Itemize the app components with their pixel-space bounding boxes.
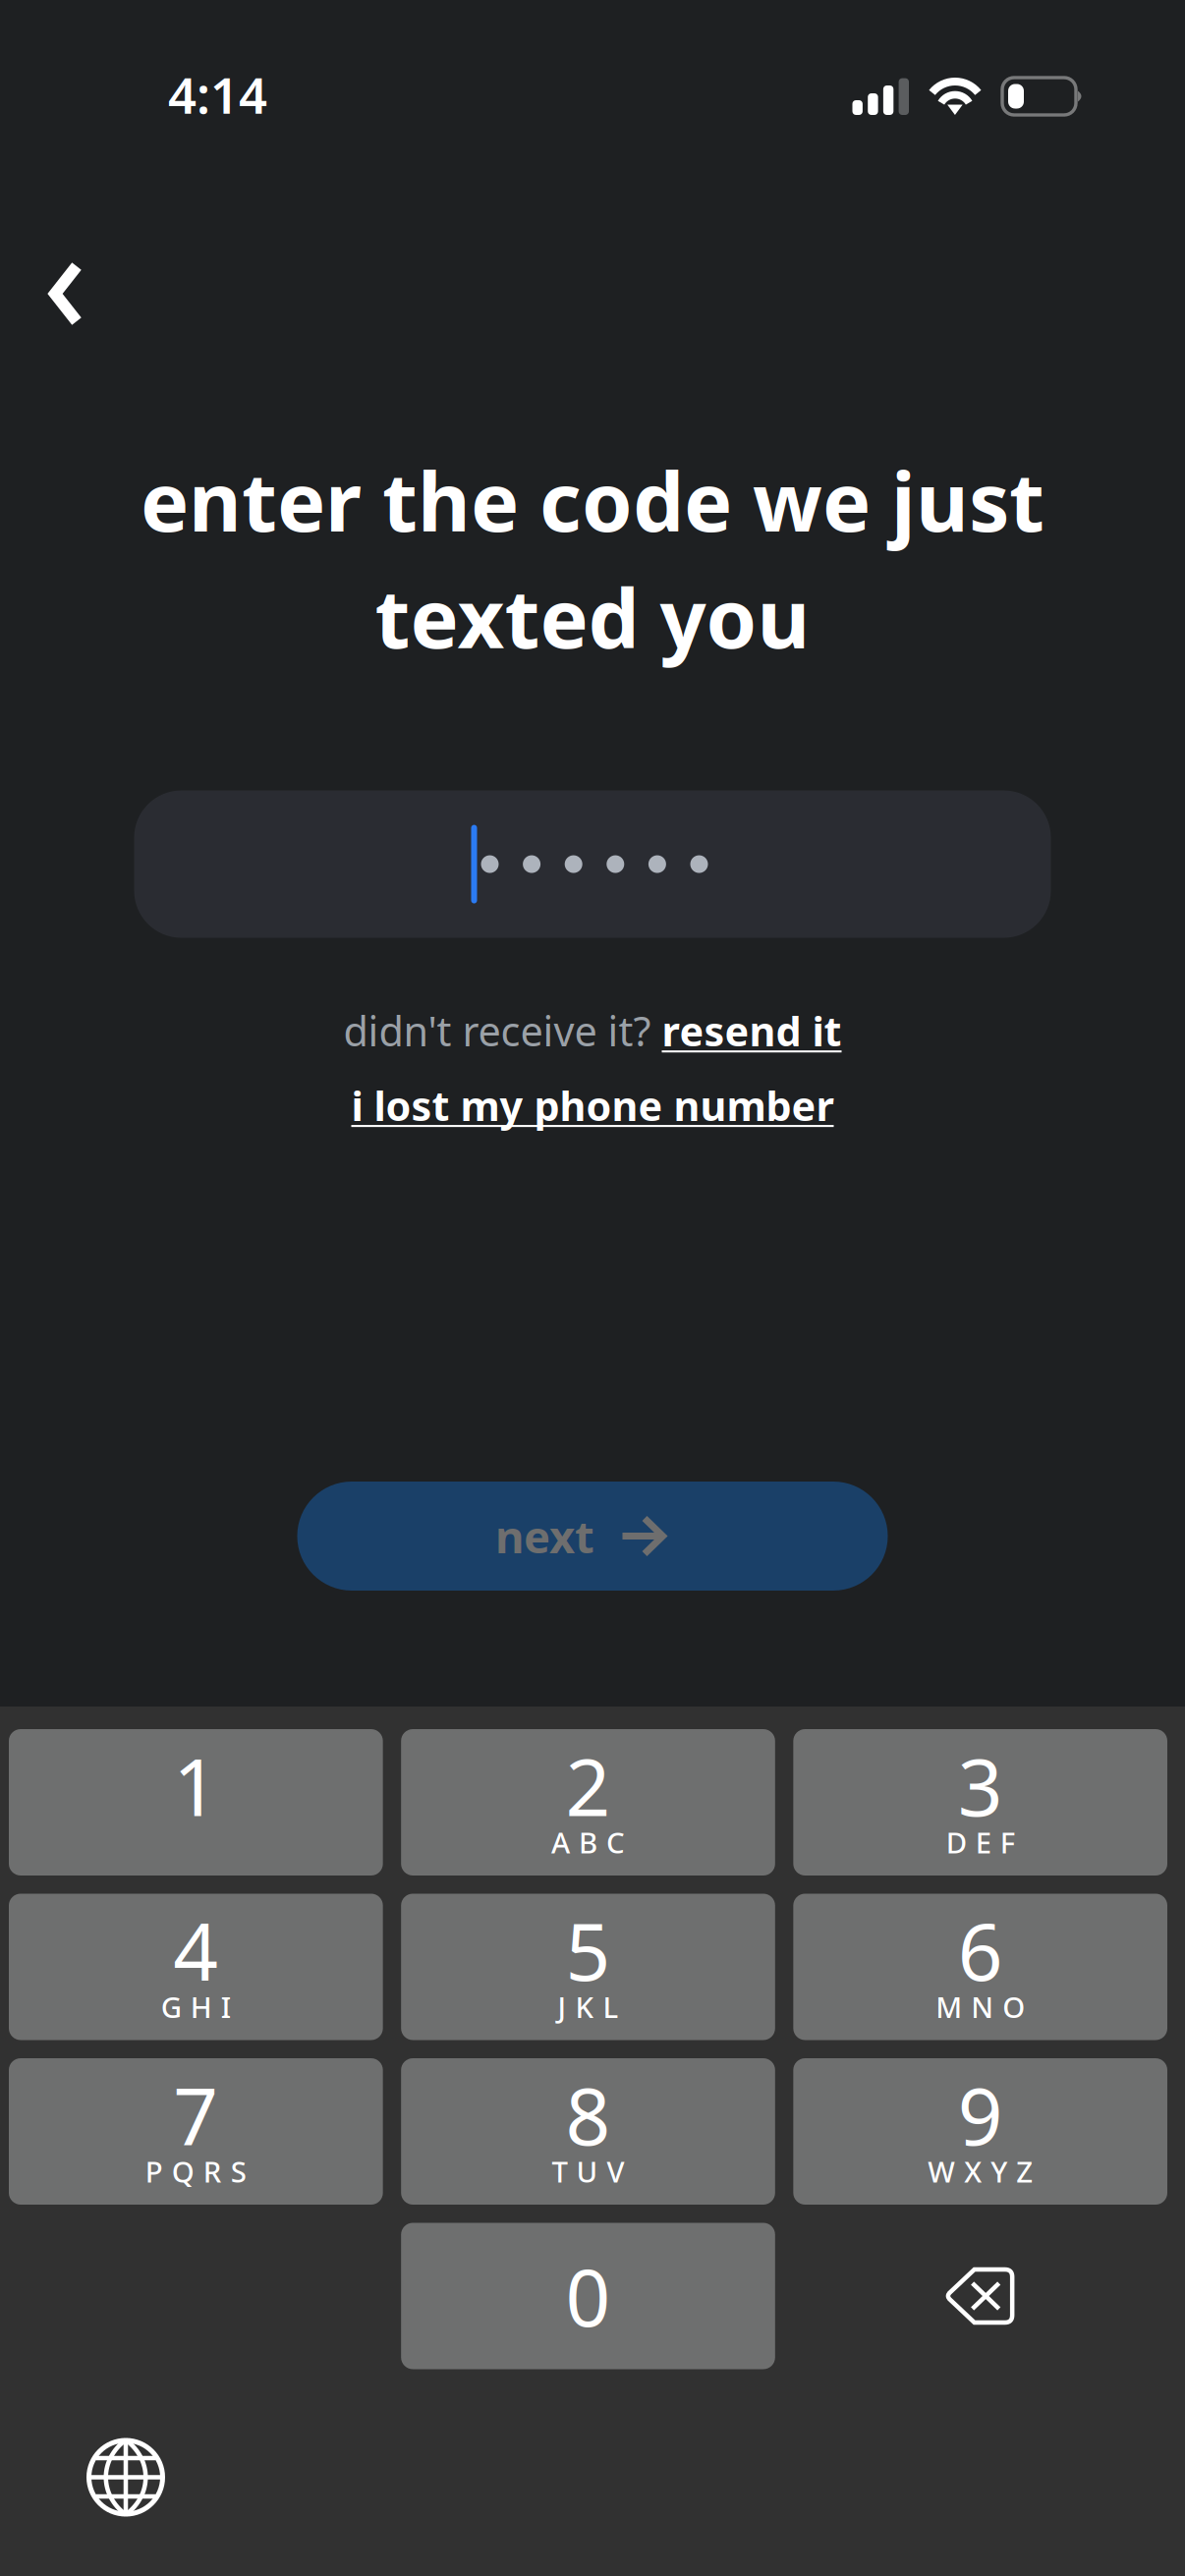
button[interactable]: 9	[793, 2058, 1167, 2205]
staticText: i lost my phone number	[351, 1078, 834, 1132]
button[interactable]: i lost my phone number	[351, 1062, 834, 1148]
staticText: 8	[565, 2063, 611, 2167]
button[interactable]: Delete	[793, 2223, 1167, 2369]
button[interactable]: resend it	[662, 1004, 842, 1058]
button[interactable]: 5	[401, 1894, 775, 2040]
staticText: 9	[958, 2063, 1003, 2167]
button[interactable]: 3	[793, 1729, 1167, 1876]
staticText: didn't receive it?	[343, 1004, 662, 1058]
button[interactable]: 4	[9, 1894, 383, 2040]
button[interactable]: 0	[401, 2223, 775, 2369]
staticText: MNO	[936, 1988, 1025, 2026]
staticText: 4	[173, 1898, 218, 2002]
staticText: GHI	[161, 1988, 231, 2026]
button[interactable]: 6	[793, 1894, 1167, 2040]
staticText: 2	[565, 1733, 611, 1838]
staticText: 5	[565, 1898, 611, 2002]
staticText: 6	[958, 1898, 1003, 2002]
staticText: JKL	[558, 1988, 619, 2026]
staticText: 0	[565, 2244, 611, 2348]
staticText: 1	[173, 1733, 218, 1838]
staticText: enter the code we just	[141, 446, 1044, 554]
button[interactable]: Change keyboard	[0, 2408, 204, 2546]
button[interactable]: next	[297, 1482, 888, 1591]
staticText: 3	[958, 1733, 1003, 1838]
button[interactable]: 2	[401, 1729, 775, 1876]
staticText: 7	[173, 2063, 218, 2167]
staticText: TUV	[552, 2152, 624, 2190]
staticText: texted you	[375, 563, 810, 671]
button[interactable]: 7	[9, 2058, 383, 2205]
staticText: DEF	[946, 1823, 1015, 1861]
staticText: WXYZ	[928, 2152, 1033, 2190]
staticText: next	[495, 1506, 594, 1566]
button[interactable]: 1	[9, 1729, 383, 1876]
staticText: ABC	[551, 1823, 625, 1861]
staticText: resend it	[662, 1004, 842, 1058]
button[interactable]: 8	[401, 2058, 775, 2205]
staticText: PQRS	[145, 2152, 246, 2190]
button[interactable]: Back	[0, 233, 122, 357]
staticText: 4:14	[168, 61, 267, 127]
